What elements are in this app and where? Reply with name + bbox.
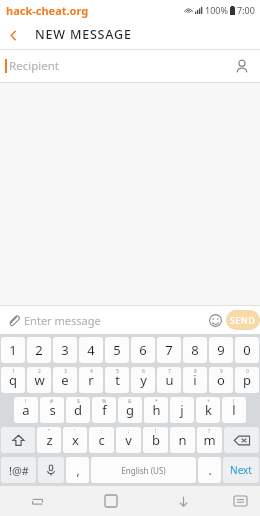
staticText: 100%: [205, 4, 228, 16]
staticText: &: [128, 398, 132, 405]
button[interactable]: Recents: [0, 486, 74, 516]
staticText: u: [165, 371, 174, 389]
staticText: 0: [246, 368, 249, 375]
button[interactable]: (: [222, 397, 246, 423]
button[interactable]: Home: [74, 486, 147, 516]
button[interactable]: 5: [105, 367, 129, 393]
staticText: 8: [191, 341, 199, 359]
button[interactable]: 7: [157, 337, 181, 363]
button[interactable]: 0: [235, 337, 259, 363]
button[interactable]: 9: [209, 367, 233, 393]
staticText: ?: [208, 428, 211, 435]
button[interactable]: Attach: [2, 309, 24, 331]
button[interactable]: 9: [209, 337, 233, 363]
staticText: -: [181, 398, 183, 405]
staticText: 4: [90, 368, 93, 375]
button[interactable]: *: [144, 397, 168, 423]
staticText: :: [101, 428, 103, 435]
staticText: 5: [113, 341, 121, 359]
button[interactable]: 6: [131, 337, 155, 363]
staticText: ,: [76, 462, 80, 478]
button[interactable]: ": [37, 427, 61, 453]
button[interactable]: Shift: [1, 427, 35, 453]
staticText: English (US): [121, 465, 166, 476]
button[interactable]: -: [170, 397, 194, 423]
button[interactable]: ·: [170, 427, 195, 453]
staticText: 7: [165, 341, 173, 359]
button[interactable]: &: [118, 397, 142, 423]
button[interactable]: Keyboard settings: [220, 486, 260, 516]
button[interactable]: 8: [183, 337, 207, 363]
staticText: ;: [128, 428, 130, 435]
button[interactable]: 4: [79, 367, 103, 393]
staticText: 3: [64, 368, 67, 375]
button[interactable]: 3: [53, 367, 77, 393]
button[interactable]: ': [63, 427, 87, 453]
staticText: 6: [142, 368, 145, 375]
button[interactable]: 3: [53, 337, 77, 363]
button[interactable]: SEND: [226, 310, 260, 330]
button[interactable]: 0: [235, 367, 259, 393]
staticText: ·: [182, 428, 184, 435]
button[interactable]: .: [198, 457, 221, 483]
button[interactable]: Recipient: [0, 50, 260, 82]
button[interactable]: $: [66, 397, 90, 423]
staticText: c: [98, 431, 105, 449]
staticText: hack-cheat.org: [6, 3, 89, 18]
button[interactable]: !: [143, 427, 168, 453]
button[interactable]: #: [40, 397, 64, 423]
staticText: (: [233, 398, 235, 405]
button[interactable]: 1: [1, 337, 25, 363]
staticText: !@#: [9, 463, 29, 478]
button[interactable]: Hide keyboard: [147, 486, 220, 516]
button[interactable]: %: [92, 397, 116, 423]
button[interactable]: ;: [116, 427, 141, 453]
staticText: y: [140, 371, 147, 389]
button[interactable]: 7: [157, 367, 181, 393]
button[interactable]: 2: [27, 367, 51, 393]
staticText: x: [72, 431, 79, 449]
staticText: e: [61, 371, 69, 389]
button[interactable]: ,: [66, 457, 89, 483]
button[interactable]: 5: [105, 337, 129, 363]
staticText: g: [126, 401, 134, 419]
staticText: Recipient: [9, 58, 59, 74]
button[interactable]: 6: [131, 367, 155, 393]
button[interactable]: Next: [223, 457, 259, 483]
button[interactable]: Voice input: [38, 457, 64, 483]
staticText: 1: [12, 368, 15, 375]
staticText: 6: [139, 341, 147, 359]
button[interactable]: 8: [183, 367, 207, 393]
staticText: Enter message: [24, 313, 101, 328]
button[interactable]: Backspace: [224, 427, 259, 453]
staticText: NEW MESSAGE: [35, 26, 132, 43]
button[interactable]: !@#: [1, 457, 36, 483]
button[interactable]: :: [89, 427, 114, 453]
button[interactable]: 1: [1, 367, 25, 393]
button[interactable]: +: [196, 397, 220, 423]
staticText: i: [193, 371, 197, 389]
button[interactable]: Emoji: [204, 309, 226, 331]
staticText: v: [125, 431, 132, 449]
staticText: 1: [9, 341, 17, 359]
button[interactable]: ?: [197, 427, 222, 453]
staticText: $: [77, 398, 80, 405]
staticText: o: [217, 371, 225, 389]
staticText: n: [178, 431, 187, 449]
staticText: b: [152, 431, 160, 449]
staticText: p: [243, 371, 251, 389]
button[interactable]: 4: [79, 337, 103, 363]
button[interactable]: English (US): [91, 457, 196, 483]
staticText: j: [180, 401, 184, 419]
staticText: .: [208, 462, 212, 478]
staticText: f: [102, 401, 107, 419]
staticText: 7: [168, 368, 171, 375]
button[interactable]: !: [14, 397, 38, 423]
staticText: !: [155, 428, 157, 435]
staticText: SEND: [230, 314, 256, 326]
button[interactable]: Add contact: [232, 56, 252, 76]
button[interactable]: Back: [0, 22, 26, 48]
staticText: h: [152, 401, 161, 419]
staticText: a: [22, 401, 30, 419]
button[interactable]: 2: [27, 337, 51, 363]
